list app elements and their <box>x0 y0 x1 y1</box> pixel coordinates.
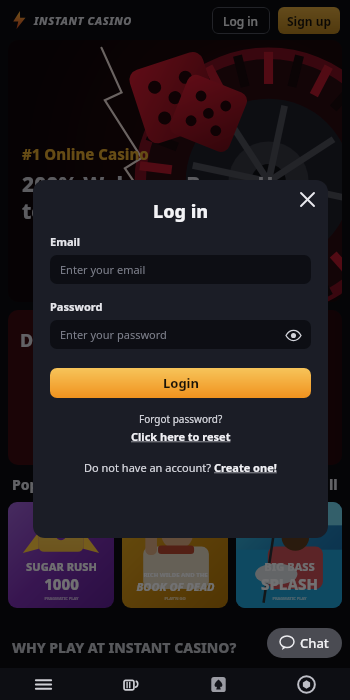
button[interactable]: Show password <box>284 326 302 344</box>
button[interactable]: SUGAR RUSH <box>8 502 114 608</box>
staticText: Create one! <box>214 460 277 475</box>
button[interactable]: Enter your password <box>50 320 311 349</box>
staticText: PRAGMATIC PLAY <box>272 596 307 601</box>
staticText: PRAGMATIC PLAY <box>44 596 79 601</box>
button[interactable]: Casino <box>174 668 262 700</box>
staticText: Do not have an account? <box>84 460 214 475</box>
staticText: Pop <box>12 475 39 494</box>
staticText: 1000 <box>44 574 79 594</box>
staticText: Click here to reset <box>131 429 231 444</box>
button[interactable]: Click here to reset <box>50 429 311 444</box>
button[interactable]: Chat <box>267 628 342 658</box>
button[interactable]: Sign up <box>278 7 340 34</box>
staticText: WHY PLAY AT INSTANT CASINO? <box>12 638 237 657</box>
button[interactable]: Log in <box>212 7 270 34</box>
staticText: Forgot password? <box>139 412 223 426</box>
staticText: Log in <box>223 13 259 29</box>
staticText: Email <box>50 234 81 249</box>
staticText: D <box>20 328 34 353</box>
staticText: 200% Welcome Bonus Up to €7,500 <box>22 170 287 225</box>
button[interactable]: Promotions <box>87 668 174 700</box>
button[interactable]: RICH WILDE AND THE <box>122 502 228 608</box>
staticText: ll <box>329 475 338 494</box>
staticText: PLAY'N GO <box>164 596 186 601</box>
staticText: Password <box>50 299 103 314</box>
staticText: Enter your password <box>60 327 167 342</box>
staticText: BOOK OF DEAD <box>136 579 215 594</box>
staticText: Enter your email <box>60 262 146 277</box>
button[interactable]: BIG BASS <box>236 502 342 608</box>
button[interactable]: Login <box>50 368 311 398</box>
button[interactable]: D <box>8 310 342 465</box>
staticText: Log in <box>153 199 209 224</box>
staticText: Login <box>163 374 199 392</box>
staticText: INSTANT CASINO <box>34 13 133 28</box>
button[interactable]: Account <box>262 668 350 700</box>
button[interactable]: Enter your email <box>50 255 311 284</box>
staticText: Chat <box>300 634 329 652</box>
staticText: Sign up <box>287 13 332 29</box>
button[interactable]: Create one! <box>214 460 277 475</box>
staticText: SPLASH <box>261 574 318 594</box>
staticText: #1 Online Casino <box>22 144 149 164</box>
staticText: RICH WILDE AND THE <box>143 571 208 579</box>
button[interactable]: Close <box>292 184 322 214</box>
staticText: SUGAR RUSH <box>26 559 97 574</box>
staticText: BIG BASS <box>264 559 315 574</box>
button[interactable]: Menu <box>0 668 87 700</box>
